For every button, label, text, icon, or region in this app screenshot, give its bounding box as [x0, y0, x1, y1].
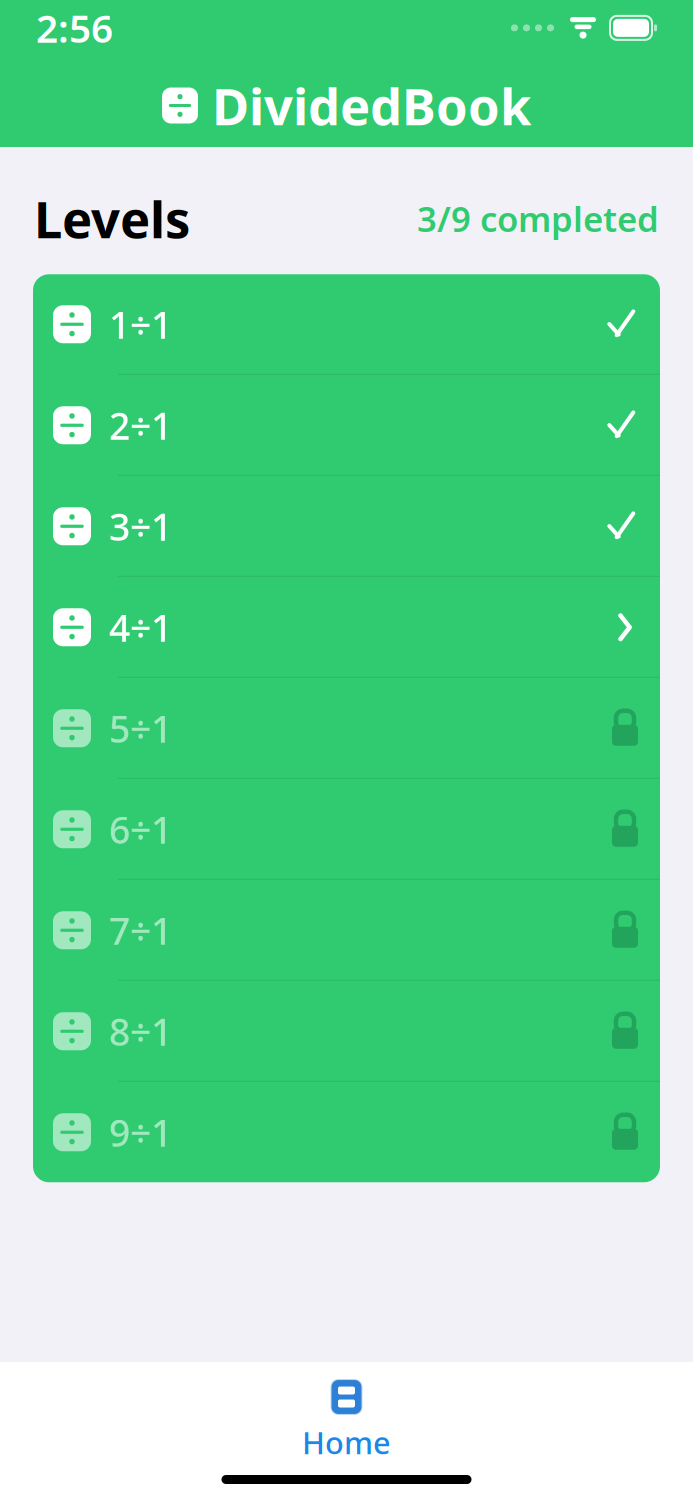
staticText: 3÷1 [109, 501, 172, 551]
button[interactable]: 6÷1 [33, 779, 660, 880]
staticText: 8÷1 [109, 1006, 172, 1056]
staticText: 1÷1 [109, 299, 172, 349]
staticText: 6÷1 [109, 804, 172, 854]
button[interactable]: 8÷1 [33, 981, 660, 1082]
staticText: Levels [34, 185, 190, 252]
button[interactable]: 4÷1 [33, 577, 660, 678]
staticText: 5÷1 [109, 703, 172, 753]
staticText: DividedBook [212, 72, 531, 139]
staticText: 3/9 completed [417, 196, 659, 242]
staticText: 7÷1 [109, 905, 172, 955]
staticText: 9÷1 [109, 1107, 172, 1157]
button[interactable]: 1÷1 [33, 274, 660, 375]
button[interactable]: 2÷1 [33, 375, 660, 476]
button[interactable]: Home [302, 1362, 391, 1463]
staticText: Home [302, 1422, 391, 1463]
staticText: 4÷1 [109, 602, 172, 652]
button[interactable]: 5÷1 [33, 678, 660, 779]
button[interactable]: 7÷1 [33, 880, 660, 981]
staticText: 2÷1 [109, 400, 172, 450]
staticText: 2:56 [36, 2, 113, 53]
button[interactable]: 3÷1 [33, 476, 660, 577]
button[interactable]: 9÷1 [33, 1082, 660, 1182]
